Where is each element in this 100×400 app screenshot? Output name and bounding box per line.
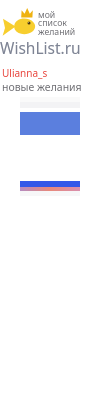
button[interactable]: мой (1, 7, 75, 37)
staticText: мой (38, 9, 56, 21)
staticText: желаний (38, 26, 76, 38)
staticText: WishList.ru (0, 37, 81, 58)
button[interactable]: Ulianna_s (2, 66, 48, 80)
staticText: Ulianna_s (2, 66, 48, 80)
staticText: список (38, 17, 67, 29)
button[interactable]: WishList.ru (0, 37, 81, 58)
staticText: новые желания (2, 80, 82, 94)
button[interactable] (20, 97, 80, 196)
